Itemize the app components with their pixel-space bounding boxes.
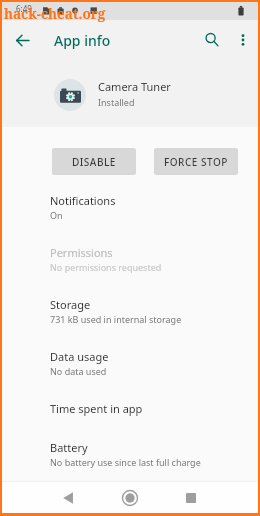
staticText: No data used	[50, 365, 107, 377]
staticText: Installed	[98, 96, 135, 108]
staticText: 6:49	[16, 3, 32, 14]
staticText: 731 kB used in internal storage	[50, 313, 182, 325]
button[interactable]: Storage	[2, 285, 258, 337]
staticText: Notifications	[50, 193, 116, 208]
button[interactable]: DISABLE	[52, 148, 136, 175]
staticText: DISABLE	[72, 155, 116, 169]
button[interactable]: Data usage	[2, 337, 258, 389]
staticText: Camera Tuner	[98, 79, 171, 94]
staticText: App info	[54, 31, 111, 50]
button[interactable]: Home	[115, 483, 145, 513]
button[interactable]: Notifications	[2, 181, 258, 233]
staticText: No permissions requested	[50, 261, 162, 273]
staticText: Storage	[50, 297, 91, 312]
staticText: Battery	[50, 440, 88, 455]
staticText: hack-cheat.org	[4, 5, 106, 23]
staticText: FORCE STOP	[164, 155, 228, 169]
staticText: On	[50, 209, 63, 221]
staticText: Data usage	[50, 349, 109, 364]
button[interactable]: Back	[54, 483, 84, 513]
button[interactable]: Recent apps	[176, 483, 206, 513]
button[interactable]: Time spent in app	[2, 389, 258, 428]
button[interactable]: FORCE STOP	[154, 148, 238, 175]
button[interactable]: Battery	[2, 428, 258, 480]
button[interactable]: Permissions	[2, 233, 258, 285]
button[interactable]: Search	[199, 27, 225, 53]
staticText: Time spent in app	[50, 401, 143, 416]
staticText: Permissions	[50, 245, 113, 260]
button[interactable]: More options	[230, 27, 256, 53]
staticText: No battery use since last full charge	[50, 456, 201, 468]
button[interactable]: Navigate up	[8, 26, 36, 54]
